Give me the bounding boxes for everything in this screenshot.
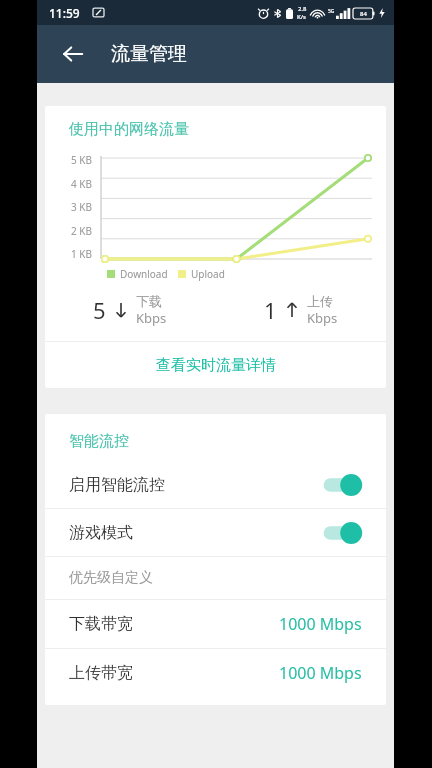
button[interactable]: Back (53, 34, 93, 74)
staticText: 84 (360, 10, 367, 18)
staticText: 1000 Mbps (279, 613, 362, 635)
staticText: 流量管理 (111, 42, 187, 66)
staticText: 下载 (136, 293, 162, 309)
button[interactable]: 游戏模式 (45, 509, 386, 556)
staticText: 2 KB (71, 224, 93, 238)
staticText: 智能流控 (69, 432, 129, 451)
button[interactable]: 上传带宽 (45, 649, 386, 697)
staticText: 2.8 (298, 5, 307, 13)
staticText: K/s (297, 13, 307, 21)
staticText: 3 KB (71, 200, 93, 214)
staticText: 1000 Mbps (279, 662, 362, 684)
staticText: 下载带宽 (69, 614, 279, 634)
button[interactable]: 下载带宽 (45, 600, 386, 648)
staticText: 11:59 (49, 5, 80, 21)
staticText: 上传 (307, 293, 333, 309)
staticText: Kbps (136, 309, 167, 327)
staticText: 查看实时流量详情 (156, 356, 276, 375)
staticText: 4 KB (71, 177, 93, 191)
button[interactable]: 启用智能流控 (45, 461, 386, 508)
staticText: 1 (264, 295, 277, 325)
staticText: 上传带宽 (69, 663, 279, 683)
button[interactable]: 查看实时流量详情 (45, 342, 386, 388)
staticText: Download (120, 267, 168, 281)
staticText: 5 KB (71, 153, 93, 167)
staticText: 优先级自定义 (69, 569, 153, 587)
staticText: Upload (191, 267, 225, 281)
staticText: 5 (93, 295, 106, 325)
staticText: 使用中的网络流量 (69, 120, 189, 139)
staticText: 启用智能流控 (69, 475, 322, 495)
staticText: 5G (328, 8, 335, 15)
staticText: Kbps (307, 309, 338, 327)
staticText: 游戏模式 (69, 523, 322, 543)
staticText: 1 KB (71, 247, 93, 261)
